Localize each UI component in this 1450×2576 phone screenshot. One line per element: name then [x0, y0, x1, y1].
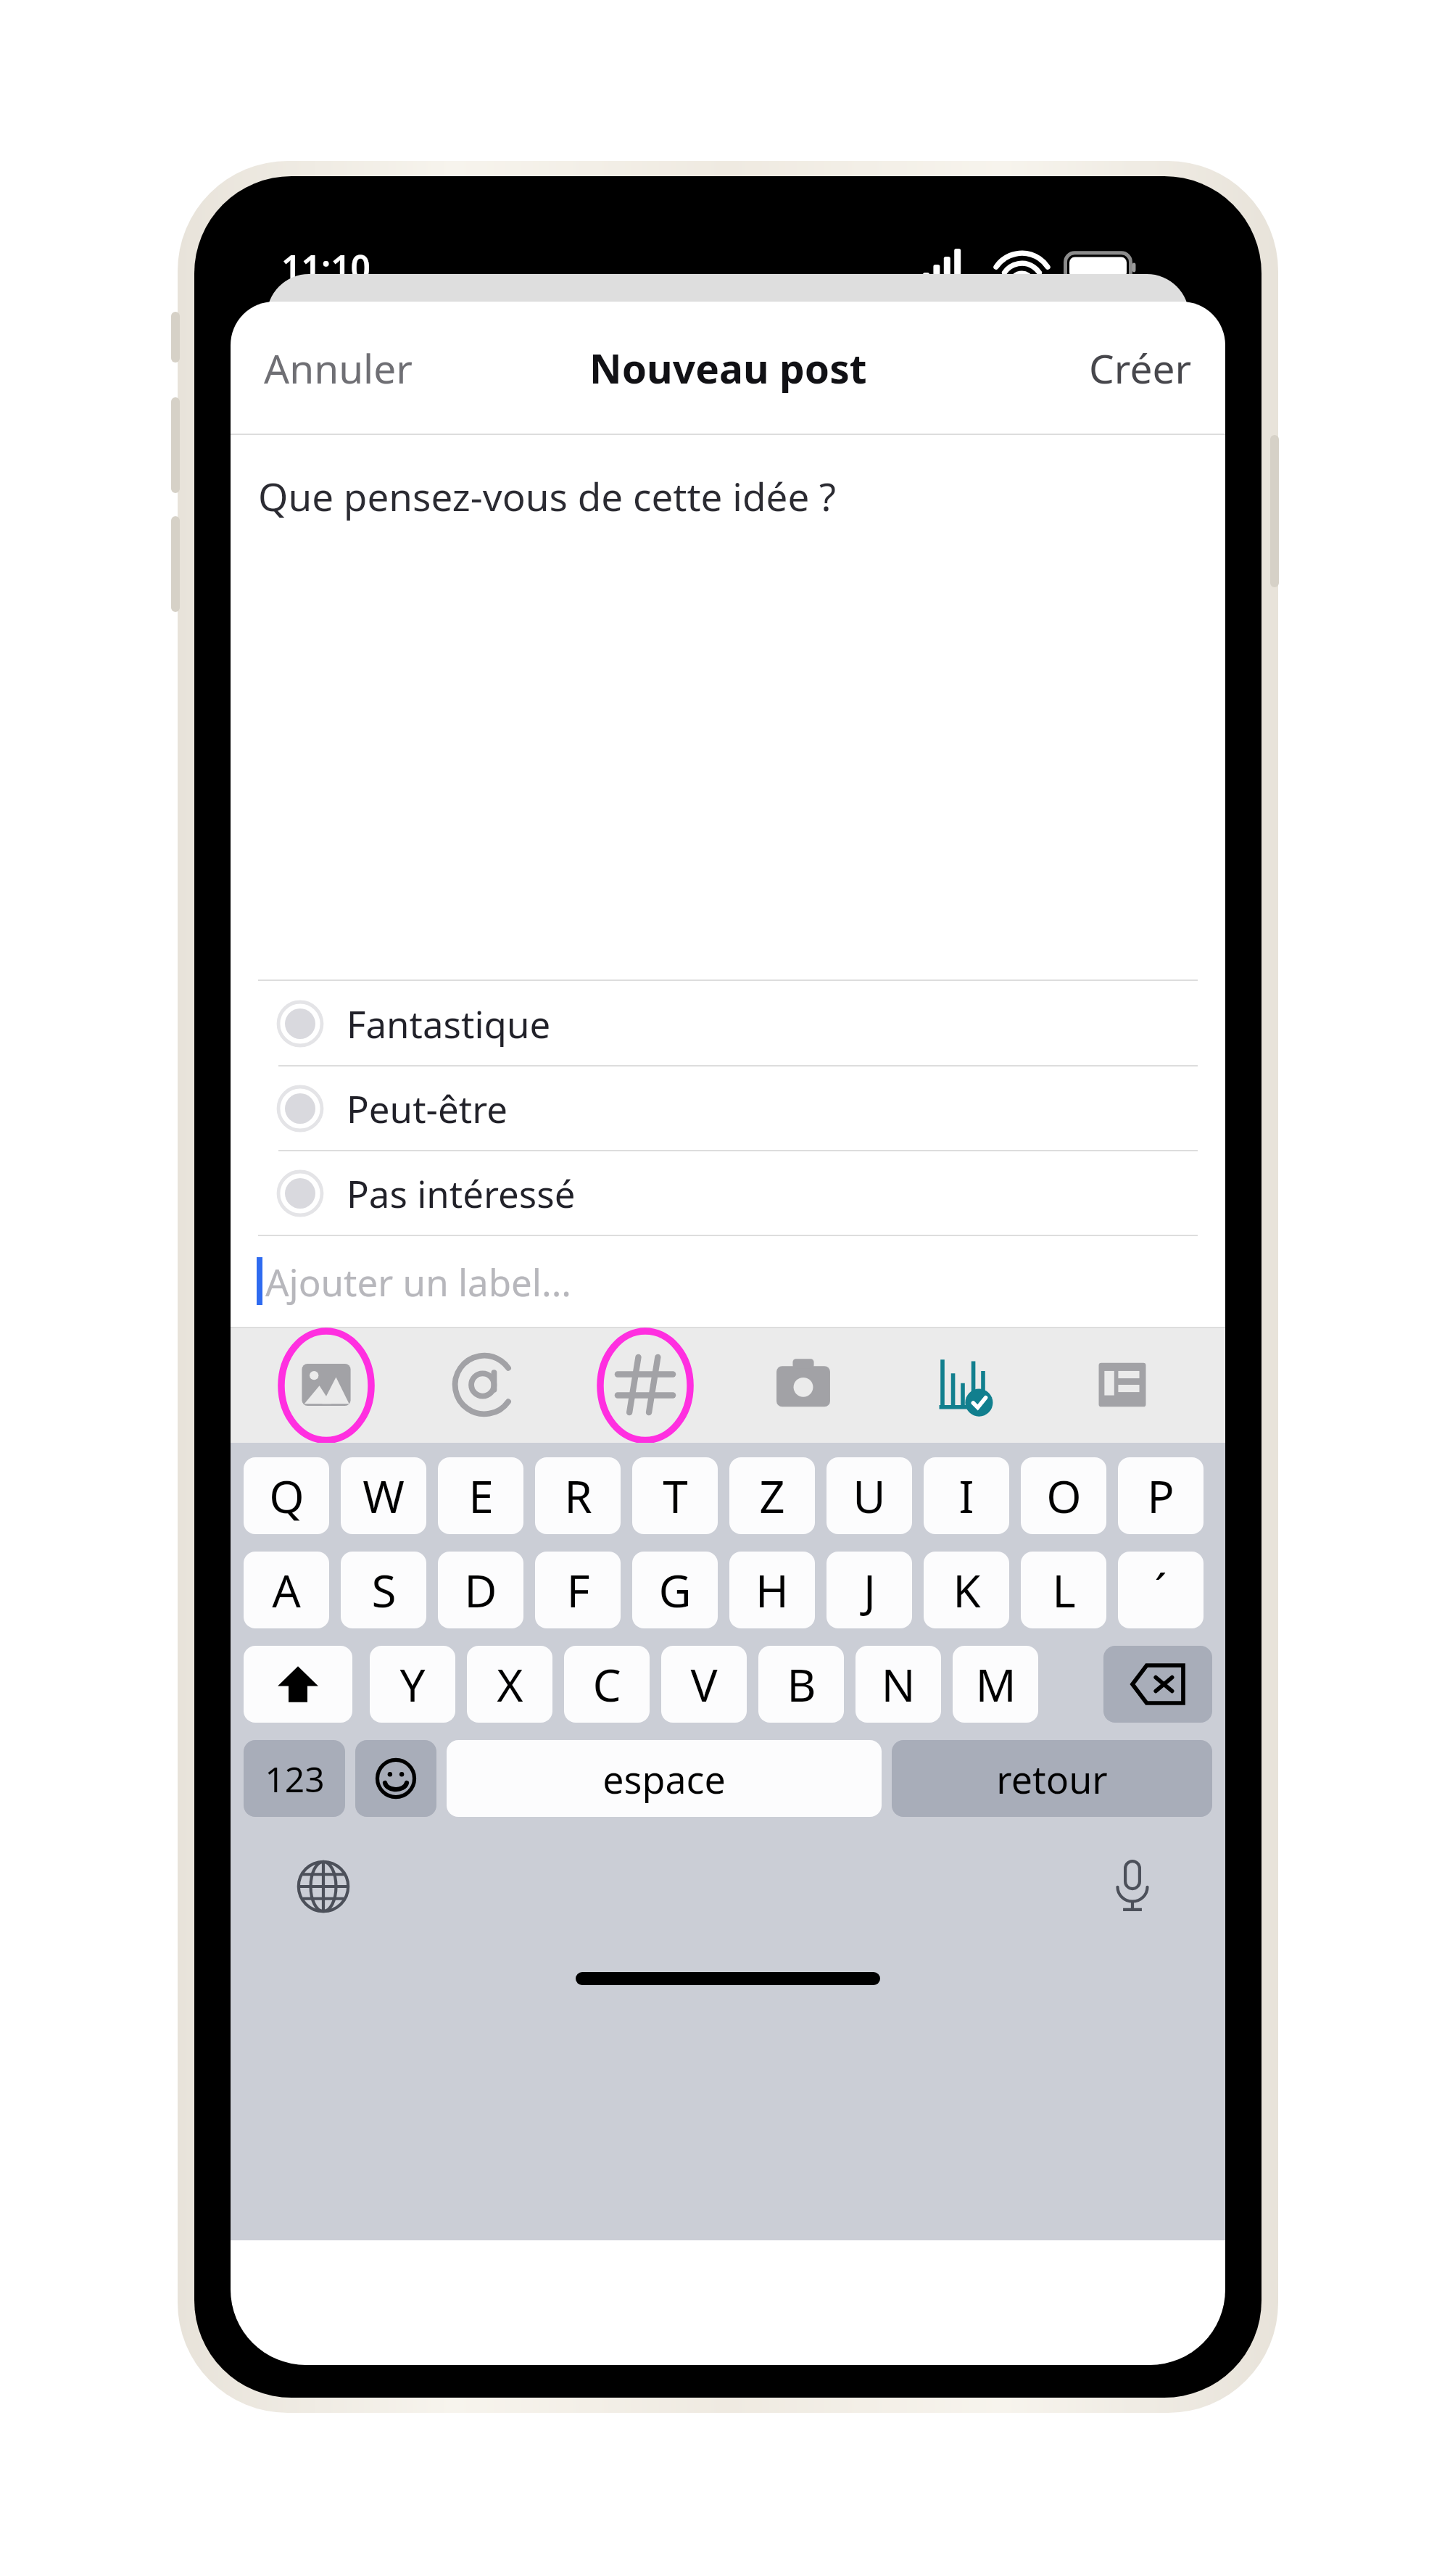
staticText: Peut-être — [347, 1083, 507, 1133]
button[interactable]: espace — [447, 1740, 882, 1817]
staticText: B — [787, 1654, 816, 1715]
staticText: X — [497, 1654, 523, 1715]
staticText: Q — [269, 1465, 304, 1526]
staticText: P — [1147, 1465, 1174, 1526]
staticText: Créer — [1089, 341, 1192, 395]
button[interactable]: G — [632, 1552, 718, 1628]
button[interactable]: Pas intéressé — [231, 1151, 1225, 1235]
button[interactable]: J — [826, 1552, 912, 1628]
button[interactable]: K — [924, 1552, 1009, 1628]
button[interactable]: ´ — [1118, 1552, 1203, 1628]
button[interactable]: W — [341, 1457, 426, 1534]
button[interactable]: Créer — [1070, 328, 1211, 408]
button[interactable]: F — [535, 1552, 621, 1628]
button[interactable]: O — [1021, 1457, 1106, 1534]
button[interactable]: H — [729, 1552, 815, 1628]
staticText: 123 — [265, 1755, 325, 1802]
button[interactable]: Emoji keyboard — [355, 1740, 436, 1817]
button[interactable]: Q — [244, 1457, 329, 1534]
button[interactable]: N — [855, 1646, 941, 1723]
staticText: Annuler — [264, 341, 413, 395]
button[interactable]: X — [467, 1646, 552, 1723]
button[interactable]: Dictation — [1096, 1850, 1169, 1923]
staticText: R — [564, 1465, 592, 1526]
button[interactable]: Annuler — [245, 328, 432, 408]
staticText: Que pensez-vous de cette idée ? — [258, 470, 837, 522]
button[interactable]: Add card — [1074, 1337, 1170, 1433]
button[interactable]: Mention someone — [436, 1337, 532, 1433]
staticText: 11:10 — [281, 244, 371, 291]
staticText: C — [592, 1654, 621, 1715]
staticText: espace — [602, 1753, 726, 1805]
staticText: H — [755, 1560, 789, 1620]
staticText: D — [464, 1560, 497, 1620]
staticText: Nouveau post — [589, 341, 867, 395]
button[interactable]: T — [632, 1457, 718, 1534]
button[interactable]: Y — [370, 1646, 455, 1723]
button[interactable]: D — [438, 1552, 523, 1628]
button[interactable]: Switch keyboard language — [287, 1850, 360, 1923]
staticText: N — [881, 1654, 916, 1715]
button[interactable]: B — [758, 1646, 844, 1723]
staticText: V — [690, 1654, 718, 1715]
staticText: U — [853, 1465, 886, 1526]
button[interactable]: retour — [892, 1740, 1212, 1817]
button[interactable]: Fantastique — [231, 981, 1225, 1066]
button[interactable]: Shift — [244, 1646, 352, 1723]
button[interactable]: Ajouter un label... — [231, 1237, 1225, 1325]
button[interactable]: M — [953, 1646, 1038, 1723]
button[interactable]: I — [924, 1457, 1009, 1534]
staticText: Z — [759, 1465, 785, 1526]
staticText: M — [975, 1654, 1016, 1715]
staticText: T — [663, 1465, 688, 1526]
button[interactable]: C — [564, 1646, 650, 1723]
staticText: E — [468, 1465, 494, 1526]
button[interactable]: Backspace — [1103, 1646, 1212, 1723]
button[interactable]: Peut-être — [231, 1066, 1225, 1151]
staticText: S — [371, 1560, 397, 1620]
staticText: G — [658, 1560, 692, 1620]
staticText: O — [1046, 1465, 1082, 1526]
button[interactable]: Add image — [278, 1337, 374, 1433]
button[interactable]: 123 — [244, 1740, 345, 1817]
button[interactable]: E — [438, 1457, 523, 1534]
button[interactable]: A — [244, 1552, 329, 1628]
button[interactable]: Add hashtag — [597, 1337, 693, 1433]
staticText: J — [863, 1560, 876, 1620]
staticText: W — [362, 1465, 405, 1526]
button[interactable]: P — [1118, 1457, 1203, 1534]
staticText: Fantastique — [347, 998, 551, 1048]
staticText: A — [272, 1560, 301, 1620]
staticText: F — [566, 1560, 590, 1620]
staticText: K — [953, 1560, 981, 1620]
button[interactable]: U — [826, 1457, 912, 1534]
staticText: L — [1052, 1560, 1076, 1620]
staticText: Ajouter un label... — [265, 1256, 571, 1306]
button[interactable]: Z — [729, 1457, 815, 1534]
button[interactable]: L — [1021, 1552, 1106, 1628]
staticText: retour — [996, 1753, 1108, 1805]
staticText: Y — [399, 1654, 426, 1715]
button[interactable]: V — [661, 1646, 747, 1723]
staticText: ´ — [1154, 1560, 1167, 1620]
button[interactable]: S — [341, 1552, 426, 1628]
button[interactable]: Add poll — [915, 1337, 1011, 1433]
staticText: I — [958, 1465, 974, 1526]
button[interactable]: R — [535, 1457, 621, 1534]
staticText: Pas intéressé — [347, 1168, 576, 1218]
button[interactable]: Take photo — [755, 1337, 851, 1433]
